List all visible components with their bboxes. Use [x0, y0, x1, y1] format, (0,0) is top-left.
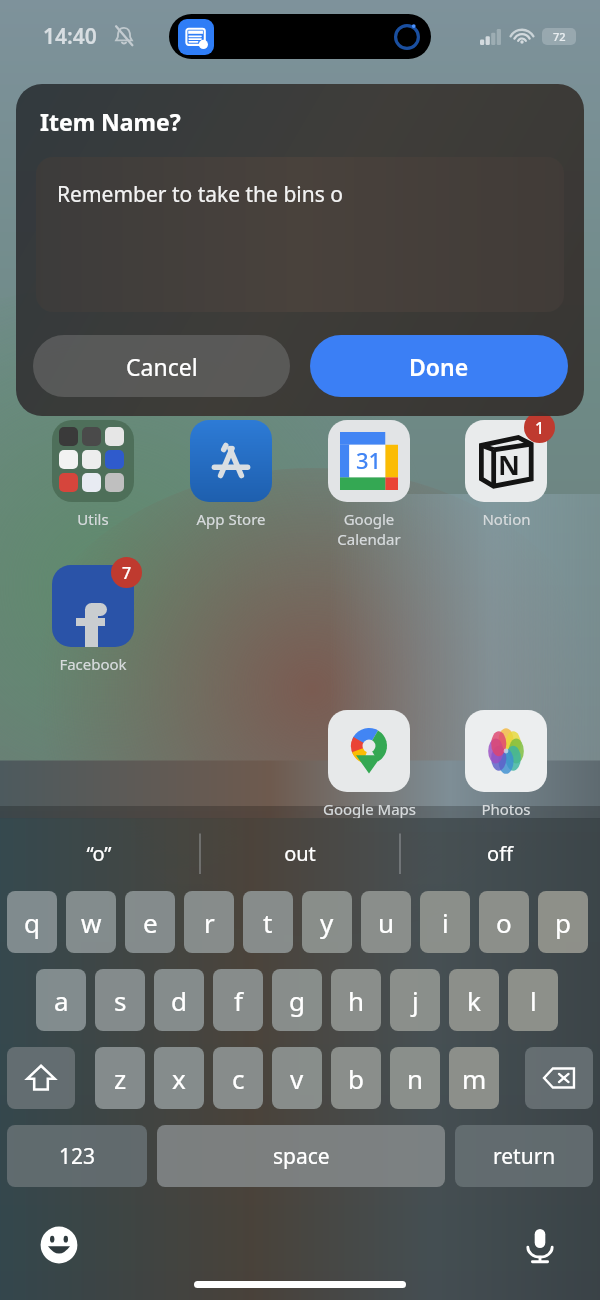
button[interactable]: Emoji keyboard	[34, 1220, 84, 1270]
button[interactable]: Backspace	[525, 1047, 593, 1109]
button[interactable]: g	[272, 969, 322, 1031]
staticText: 123	[59, 1142, 96, 1171]
button[interactable]: m	[449, 1047, 499, 1109]
button[interactable]: y	[302, 891, 352, 953]
button[interactable]: return	[455, 1125, 593, 1187]
staticText: k	[467, 983, 481, 1018]
button[interactable]: d	[154, 969, 204, 1031]
button[interactable]: 7	[40, 565, 146, 674]
staticText: u	[378, 905, 395, 940]
button[interactable]: 123	[7, 1125, 147, 1187]
button[interactable]: Google Maps	[316, 710, 422, 819]
staticText: h	[348, 983, 365, 1018]
button[interactable]: 31	[316, 420, 422, 549]
staticText: n	[407, 1061, 424, 1096]
staticText: m	[462, 1061, 487, 1096]
button[interactable]: q	[7, 891, 57, 953]
staticText: v	[290, 1061, 304, 1096]
staticText: 14:40	[43, 22, 97, 51]
button[interactable]: Cancel	[33, 335, 290, 397]
button[interactable]: Shift	[7, 1047, 75, 1109]
staticText: out	[284, 840, 316, 867]
button[interactable]: Utils	[40, 420, 146, 529]
button[interactable]: Remember to take the bins o	[36, 157, 564, 312]
staticText: 72	[553, 29, 566, 44]
staticText: Done	[409, 351, 469, 382]
staticText: Google Maps	[323, 799, 416, 819]
button[interactable]: space	[157, 1125, 445, 1187]
staticText: Remember to take the bins o	[57, 180, 343, 209]
button[interactable]: a	[36, 969, 86, 1031]
button[interactable]: o	[479, 891, 529, 953]
staticText: Photos	[481, 799, 531, 819]
staticText: return	[493, 1142, 556, 1171]
staticText: w	[81, 905, 102, 940]
staticText: c	[232, 1061, 245, 1096]
button[interactable]: v	[272, 1047, 322, 1109]
staticText: Item Name?	[40, 106, 181, 137]
button[interactable]: t	[243, 891, 293, 953]
staticText: y	[320, 905, 334, 940]
button[interactable]: out	[210, 818, 390, 888]
staticText: x	[172, 1061, 186, 1096]
staticText: f	[234, 983, 243, 1018]
staticText: o	[496, 905, 512, 940]
staticText: 1	[535, 417, 545, 439]
button[interactable]: App Store	[178, 420, 284, 529]
button[interactable]: w	[66, 891, 116, 953]
button[interactable]: N	[453, 420, 559, 529]
staticText: i	[442, 905, 449, 940]
staticText: Google Calendar	[316, 509, 422, 549]
staticText: 7	[122, 562, 132, 584]
button[interactable]: k	[449, 969, 499, 1031]
button[interactable]: j	[390, 969, 440, 1031]
button[interactable]: f	[213, 969, 263, 1031]
staticText: l	[530, 983, 537, 1018]
button[interactable]: s	[95, 969, 145, 1031]
button[interactable]: l	[508, 969, 558, 1031]
button[interactable]: Dictation	[515, 1220, 565, 1270]
staticText: q	[24, 905, 40, 940]
staticText: s	[114, 983, 127, 1018]
button[interactable]: e	[125, 891, 175, 953]
staticText: Cancel	[126, 351, 198, 382]
staticText: “o”	[86, 840, 112, 867]
button[interactable]: Done	[310, 335, 568, 397]
staticText: Facebook	[59, 654, 127, 674]
staticText: N	[498, 446, 520, 483]
staticText: p	[555, 905, 571, 940]
staticText: off	[487, 840, 513, 867]
staticText: 31	[356, 445, 382, 475]
staticText: j	[412, 983, 419, 1018]
button[interactable]: n	[390, 1047, 440, 1109]
staticText: e	[143, 905, 158, 940]
button[interactable]: “o”	[9, 818, 189, 888]
staticText: a	[54, 983, 69, 1018]
button[interactable]: h	[331, 969, 381, 1031]
staticText: b	[348, 1061, 364, 1096]
staticText: r	[204, 905, 215, 940]
staticText: Notion	[482, 509, 531, 529]
button[interactable]: x	[154, 1047, 204, 1109]
staticText: App Store	[196, 509, 266, 529]
button[interactable]: r	[184, 891, 234, 953]
staticText: g	[289, 983, 305, 1018]
button[interactable]: i	[420, 891, 470, 953]
button[interactable]: Photos	[453, 710, 559, 819]
staticText: Utils	[77, 509, 109, 529]
button[interactable]: b	[331, 1047, 381, 1109]
button[interactable]: off	[410, 818, 590, 888]
staticText: d	[171, 983, 187, 1018]
staticText: space	[273, 1142, 330, 1171]
button[interactable]: p	[538, 891, 588, 953]
button[interactable]: c	[213, 1047, 263, 1109]
button[interactable]: u	[361, 891, 411, 953]
staticText: t	[263, 905, 273, 940]
staticText: z	[114, 1061, 127, 1096]
button[interactable]: z	[95, 1047, 145, 1109]
